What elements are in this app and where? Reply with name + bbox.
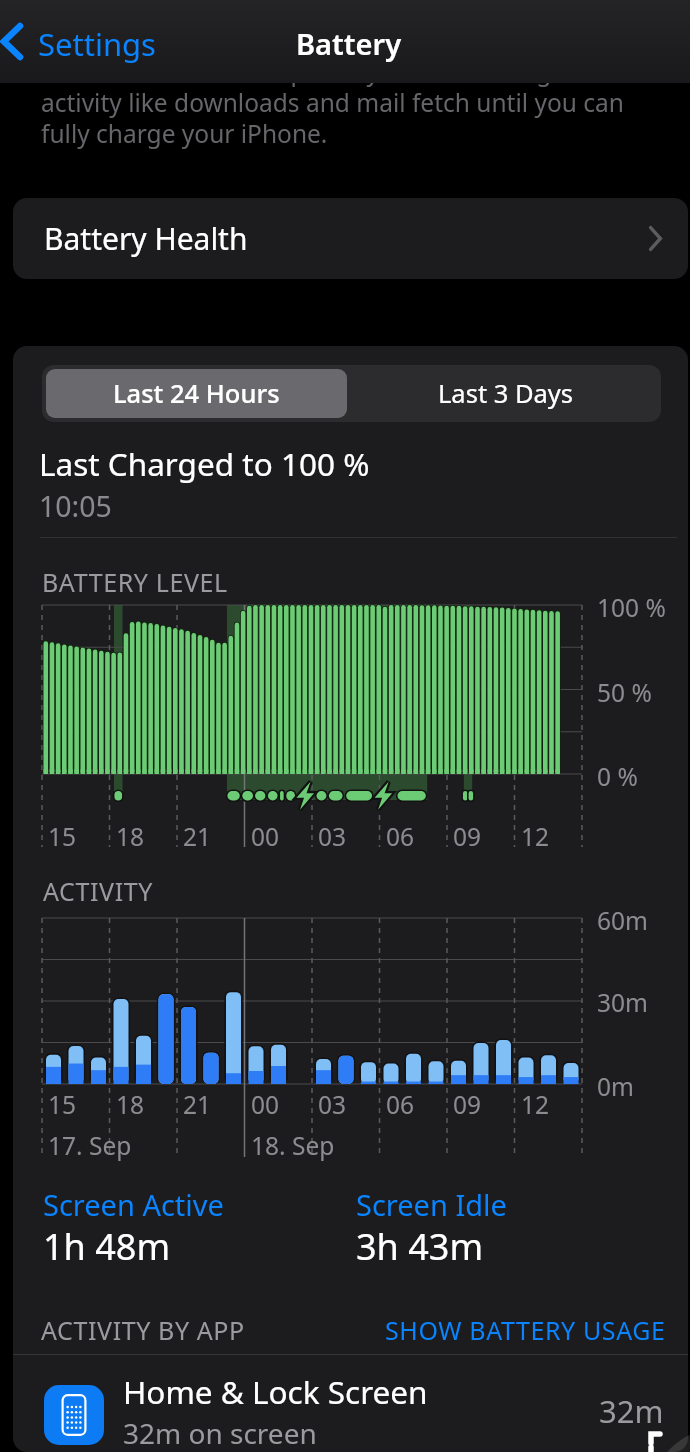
staticText: 00: [251, 1088, 280, 1121]
button[interactable]: Home & Lock Screen: [13, 1377, 688, 1452]
staticText: ACTIVITY: [43, 874, 153, 908]
staticText: 60m: [597, 904, 648, 937]
button[interactable]: Back to Settings: [0, 0, 170, 83]
staticText: 0 %: [597, 760, 638, 793]
button[interactable]: SHOW BATTERY USAGE: [385, 1313, 666, 1347]
button[interactable]: Screen Idle: [356, 1185, 507, 1224]
staticText: 15: [48, 1088, 77, 1121]
staticText: Last Charged to 100 %: [39, 442, 370, 485]
staticText: 18: [116, 820, 145, 853]
staticText: 18: [116, 1088, 145, 1121]
staticText: Battery: [296, 24, 402, 63]
staticText: 32m on screen: [123, 1414, 317, 1452]
staticText: 0m: [597, 1070, 634, 1103]
staticText: Last 3 Days: [438, 376, 574, 411]
staticText: 09: [453, 820, 482, 853]
button[interactable]: Battery Health: [13, 198, 688, 279]
staticText: 30m: [597, 986, 648, 1019]
staticText: 09: [453, 1088, 482, 1121]
staticText: Last 24 Hours: [113, 376, 280, 411]
staticText: 21: [183, 1088, 212, 1121]
staticText: ACTIVITY BY APP: [41, 1313, 245, 1347]
staticText: 3h 43m: [356, 1222, 484, 1271]
staticText: 06: [386, 820, 415, 853]
staticText: 06: [386, 1088, 415, 1121]
staticText: 03: [318, 1088, 347, 1121]
staticText: Battery Health: [44, 218, 248, 259]
staticText: 1h 48m: [43, 1222, 171, 1271]
staticText: 03: [318, 820, 347, 853]
staticText: 00: [251, 820, 280, 853]
button[interactable]: Last 24 Hours: [46, 369, 347, 418]
staticText: 50 %: [597, 676, 652, 709]
staticText: Settings: [38, 23, 156, 65]
staticText: BATTERY LEVEL: [42, 565, 228, 599]
staticText: 15: [48, 820, 77, 853]
staticText: 21: [183, 820, 212, 853]
staticText: 12: [521, 820, 550, 853]
staticText: 100 %: [597, 591, 666, 624]
staticText: 10:05: [39, 487, 112, 526]
staticText: 12: [521, 1088, 550, 1121]
staticText: 18. Sep: [251, 1129, 335, 1162]
button[interactable]: Screenshot: [600, 1390, 690, 1452]
staticText: Low Power Mode temporarily reduces backg…: [41, 55, 639, 151]
staticText: 32m: [599, 1390, 664, 1432]
staticText: Home & Lock Screen: [123, 1370, 428, 1413]
button[interactable]: Last 3 Days: [351, 365, 661, 422]
staticText: 17. Sep: [48, 1129, 132, 1162]
button[interactable]: Screen Active: [43, 1185, 224, 1224]
